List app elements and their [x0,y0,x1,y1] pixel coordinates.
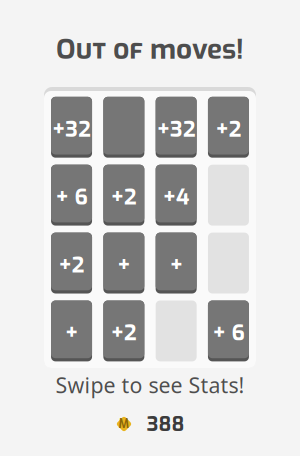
staticText: 388 [146,410,184,437]
staticText: + 6 [55,182,87,212]
staticText: Swipe to see Stats! [55,371,244,399]
staticText: moves! [150,31,244,68]
staticText: +4 [163,182,190,212]
staticText: +2 [58,250,84,280]
staticText: Out of [56,31,150,68]
staticText: + [65,318,78,347]
staticText: +32 [157,115,196,144]
staticText: + 6 [212,318,244,347]
staticText: + [170,250,183,280]
staticText: +2 [111,318,137,347]
staticText: +2 [215,115,241,144]
staticText: + [117,250,130,280]
staticText: +32 [52,115,91,144]
staticText: M [118,416,129,432]
staticText: +2 [111,182,137,212]
